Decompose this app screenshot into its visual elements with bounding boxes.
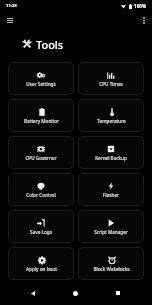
staticText: 100%: [134, 3, 147, 9]
button[interactable]: CPU Times: [78, 62, 144, 95]
button[interactable]: Flasher: [78, 173, 144, 206]
button[interactable]: Back: [24, 284, 42, 302]
button[interactable]: CPU Governor: [8, 136, 74, 169]
staticText: 11:23: [6, 3, 17, 9]
button[interactable]: Kernel Backup: [78, 136, 144, 169]
button[interactable]: Battery Monitor: [8, 99, 74, 132]
staticText: Tools: [36, 37, 64, 52]
staticText: Kernel Backup: [95, 155, 127, 161]
button[interactable]: Script Manager: [78, 210, 144, 243]
staticText: Flasher: [103, 192, 119, 198]
staticText: CPU Times: [99, 81, 123, 87]
staticText: Battery Monitor: [24, 118, 59, 124]
staticText: Script Manager: [94, 229, 128, 235]
button[interactable]: Apply on boot: [8, 247, 74, 280]
button[interactable]: Home: [66, 284, 84, 302]
staticText: Color Control: [26, 192, 56, 198]
staticText: Save Logs: [30, 229, 52, 235]
staticText: CPU Governor: [25, 155, 57, 161]
staticText: Temperature: [97, 118, 126, 124]
staticText: Block Wakelocks: [93, 266, 130, 272]
button[interactable]: Color Control: [8, 173, 74, 206]
button[interactable]: Temperature: [78, 99, 144, 132]
button[interactable]: User Settings: [8, 62, 74, 95]
button[interactable]: Block Wakelocks: [78, 247, 144, 280]
button[interactable]: More options: [137, 13, 151, 27]
staticText: User Settings: [26, 81, 56, 87]
button[interactable]: Save Logs: [8, 210, 74, 243]
staticText: Apply on boot: [26, 266, 57, 272]
button[interactable]: Recent apps: [109, 284, 127, 302]
button[interactable]: Open navigation menu: [3, 13, 17, 27]
